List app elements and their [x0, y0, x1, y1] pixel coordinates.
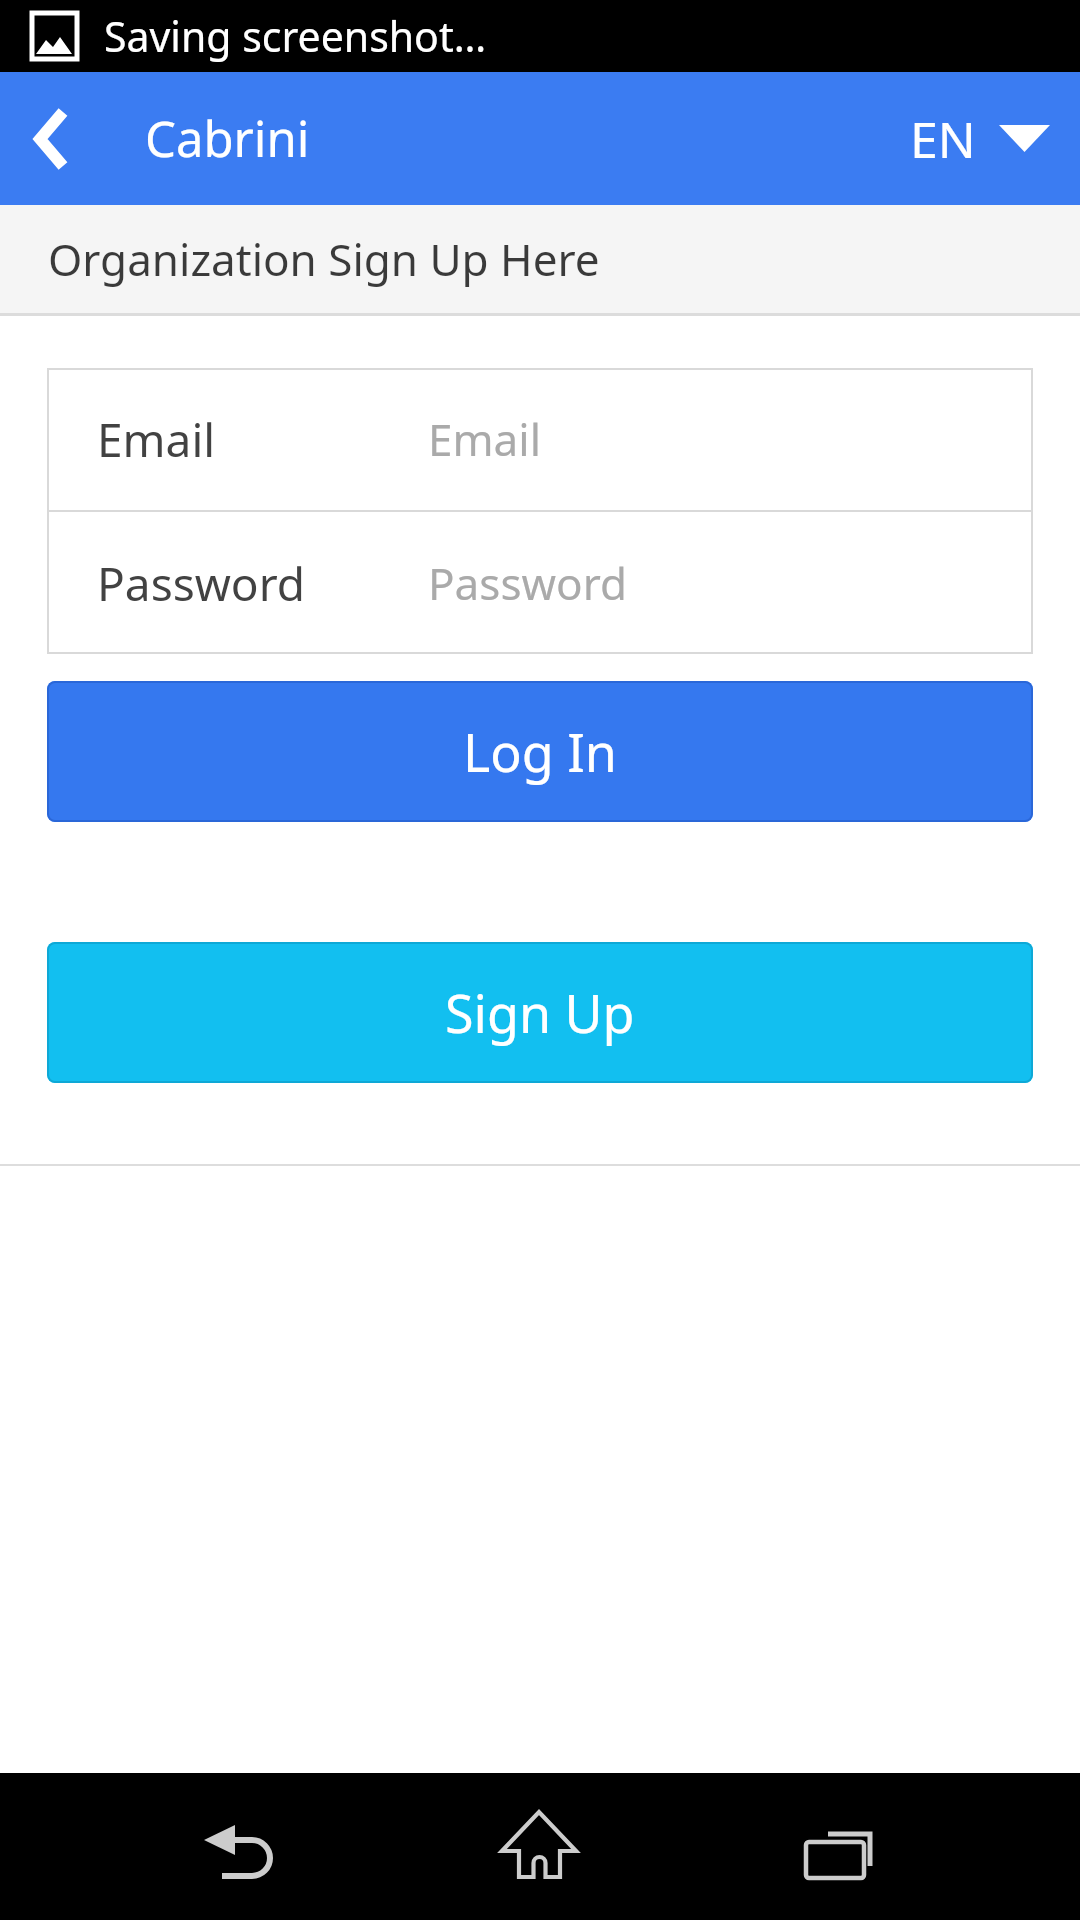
staticText: Saving screenshot…: [104, 8, 487, 64]
staticText: Email: [428, 409, 541, 469]
button[interactable]: Log In: [47, 681, 1033, 822]
button[interactable]: Email: [47, 368, 1033, 510]
staticText: Log In: [463, 716, 617, 787]
staticText: Organization Sign Up Here: [48, 229, 600, 289]
button[interactable]: Sign Up: [47, 942, 1033, 1083]
staticText: Email: [97, 408, 216, 471]
button[interactable]: [0, 72, 110, 205]
button[interactable]: [360, 1773, 720, 1920]
staticText: Sign Up: [445, 977, 635, 1048]
button[interactable]: [720, 1773, 1080, 1920]
button[interactable]: EN: [910, 72, 1050, 205]
staticText: Password: [428, 553, 628, 613]
staticText: Cabrini: [145, 105, 310, 172]
staticText: Password: [97, 552, 306, 615]
button[interactable]: Password: [47, 512, 1033, 654]
staticText: EN: [910, 105, 976, 173]
button[interactable]: [0, 1773, 360, 1920]
